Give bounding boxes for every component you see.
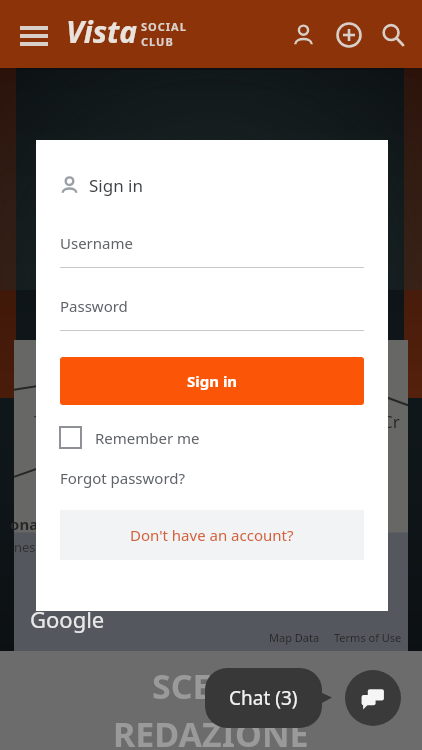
staticText: Chat (3) <box>229 685 298 711</box>
staticText: Vista <box>66 11 137 52</box>
staticText: Sign in <box>89 174 143 197</box>
button[interactable]: Add <box>330 16 368 54</box>
button[interactable]: Vista <box>66 11 187 52</box>
staticText: Username <box>60 233 133 253</box>
staticText: T <box>34 410 44 433</box>
button[interactable]: Open chat <box>345 670 401 726</box>
staticText: Google <box>30 604 105 634</box>
button[interactable]: Forgot password? <box>60 468 186 488</box>
staticText: CLUB <box>141 34 174 49</box>
staticText: nes <box>14 538 36 556</box>
button[interactable]: Chat (3) <box>205 668 322 728</box>
button[interactable]: Sign in <box>60 357 364 405</box>
button[interactable]: Sign in <box>60 174 143 197</box>
staticText: REDAZIONE <box>113 711 309 750</box>
staticText: Sign in <box>187 371 238 391</box>
button[interactable]: Username <box>60 233 364 268</box>
staticText: ona <box>10 514 39 534</box>
button[interactable]: Account <box>284 16 322 54</box>
button[interactable]: Remember me <box>60 427 200 448</box>
staticText: Forgot password? <box>60 468 186 488</box>
button[interactable]: Don't have an account? <box>60 510 364 560</box>
button[interactable]: Open navigation menu <box>12 14 56 58</box>
staticText: Password <box>60 296 128 316</box>
staticText: Don't have an account? <box>130 525 294 545</box>
staticText: Cr <box>382 410 400 433</box>
staticText: SCELTA <box>152 663 271 709</box>
staticText: Map Data <box>269 630 320 645</box>
staticText: Terms of Use <box>334 630 402 645</box>
button[interactable]: Search <box>374 16 412 54</box>
staticText: Remember me <box>95 428 200 448</box>
staticText: SOCIAL <box>141 19 187 34</box>
button[interactable]: Password <box>60 296 364 331</box>
